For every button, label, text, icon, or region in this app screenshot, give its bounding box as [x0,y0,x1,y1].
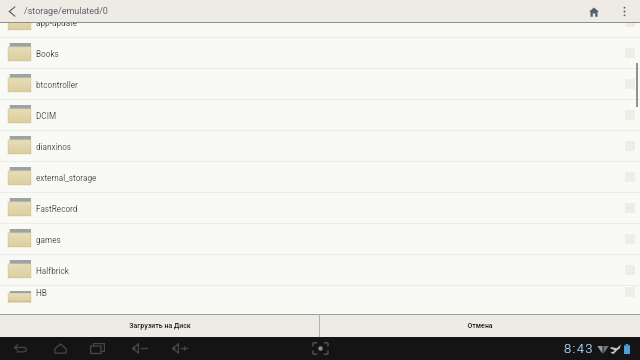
button[interactable]: Recents [82,337,112,360]
button[interactable]: Back [6,337,36,360]
button[interactable]: Select games [619,224,640,254]
button[interactable]: Загрузить на Диск [0,314,319,337]
button[interactable]: Books [0,38,640,68]
staticText: app-update [36,23,78,28]
button[interactable]: Select btcontroller [619,69,640,99]
button[interactable]: HB [0,286,640,297]
button[interactable]: app-update [0,23,640,37]
staticText: 8:43 [564,341,594,356]
button[interactable]: Volume down [125,337,155,360]
button[interactable]: Back [0,0,24,23]
staticText: Books [36,49,59,59]
staticText: /storage/emulated/0 [24,6,108,17]
button[interactable]: Select dianxinos [619,131,640,161]
staticText: btcontroller [36,80,78,90]
button[interactable]: Select app-update [619,23,640,37]
staticText: dianxinos [36,142,72,152]
button[interactable]: Halfbrick [0,255,640,285]
button[interactable]: DCIM [0,100,640,130]
button[interactable]: Select FastRecord [619,193,640,223]
button[interactable]: Отмена [320,314,640,337]
button[interactable]: Screenshot [305,337,335,360]
button[interactable]: Select DCIM [619,100,640,130]
button[interactable]: Volume up [165,337,195,360]
staticText: FastRecord [36,204,78,214]
button[interactable]: Select Books [619,38,640,68]
staticText: Halfbrick [36,266,69,276]
button[interactable]: Select Halfbrick [619,255,640,285]
button[interactable]: Home [45,337,75,360]
button[interactable]: Home [580,0,608,23]
staticText: DCIM [36,111,57,121]
button[interactable]: FastRecord [0,193,640,223]
staticText: external_storage [36,173,97,183]
staticText: HB [36,288,47,298]
staticText: games [36,235,61,245]
button[interactable]: Select HB [619,286,640,297]
button[interactable]: More options [608,0,640,23]
button[interactable]: btcontroller [0,69,640,99]
button[interactable]: games [0,224,640,254]
staticText: Отмена [467,322,493,330]
button[interactable]: external_storage [0,162,640,192]
button[interactable]: Select external_storage [619,162,640,192]
button[interactable]: dianxinos [0,131,640,161]
staticText: Загрузить на Диск [129,322,191,330]
